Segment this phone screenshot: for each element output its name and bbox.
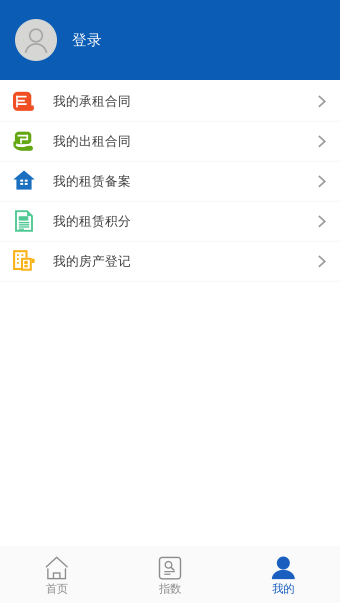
staticText: 登录 xyxy=(72,31,102,49)
button[interactable]: 我的租赁备案 xyxy=(0,161,340,201)
button[interactable]: 首页 xyxy=(0,546,113,603)
staticText: 我的租赁备案 xyxy=(53,173,131,189)
staticText: 我的出租合同 xyxy=(53,133,131,149)
staticText: 我的房产登记 xyxy=(53,253,131,269)
button[interactable]: 我的出租合同 xyxy=(0,121,340,161)
staticText: 我的租赁积分 xyxy=(53,213,131,229)
button[interactable]: 指数 xyxy=(113,546,227,603)
staticText: 我的承租合同 xyxy=(53,93,131,109)
staticText: 我的 xyxy=(272,582,294,596)
button[interactable]: 登录 xyxy=(0,0,340,80)
button[interactable]: 我的房产登记 xyxy=(0,241,340,281)
button[interactable]: 我的 xyxy=(227,546,340,603)
button[interactable]: 我的租赁积分 xyxy=(0,201,340,241)
staticText: 指数 xyxy=(159,582,181,596)
staticText: 首页 xyxy=(46,582,68,596)
button[interactable]: 我的承租合同 xyxy=(0,81,340,121)
